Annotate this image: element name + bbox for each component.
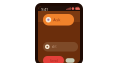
staticText: Send xyxy=(49,58,57,63)
staticText: 9:41 xyxy=(41,7,48,12)
staticText: Ask xyxy=(53,17,60,22)
button[interactable]: Send xyxy=(43,56,64,63)
staticText: Edit xyxy=(52,45,57,48)
button[interactable]: Ask xyxy=(43,14,74,25)
button[interactable]: More options xyxy=(66,58,75,63)
button[interactable]: Edit xyxy=(43,42,78,51)
